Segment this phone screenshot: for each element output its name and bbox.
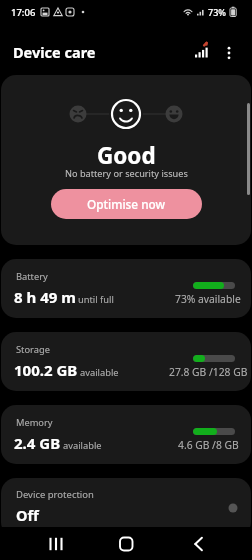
staticText: until full	[78, 293, 114, 306]
staticText: Battery	[16, 270, 48, 283]
staticText: 73%	[208, 6, 226, 18]
staticText: 27.8 GB /128 GB	[169, 365, 248, 379]
button[interactable]: Back	[175, 527, 225, 560]
staticText: Off	[16, 505, 39, 525]
staticText: 100.2 GB	[14, 360, 78, 380]
button[interactable]: Optimise now	[51, 189, 202, 219]
button[interactable]: Device protection	[1, 478, 251, 537]
button[interactable]: More options	[215, 39, 243, 67]
staticText: Optimise now	[87, 196, 166, 212]
staticText: available	[80, 366, 119, 379]
staticText: Memory	[16, 416, 53, 429]
button[interactable]: Recent apps	[30, 527, 80, 560]
staticText: Device protection	[16, 488, 94, 501]
button[interactable]: Storage	[1, 332, 251, 391]
staticText: 4.6 GB /8 GB	[178, 438, 239, 452]
staticText: 17:06	[11, 6, 36, 19]
staticText: Storage	[16, 343, 50, 356]
button[interactable]: Performance chart	[188, 39, 216, 67]
button[interactable]: Memory	[1, 405, 251, 464]
staticText: available	[63, 439, 102, 452]
staticText: 2.4 GB	[14, 433, 61, 453]
staticText: 73% available	[175, 292, 241, 306]
button[interactable]: Battery	[1, 259, 251, 318]
staticText: Good	[97, 140, 156, 171]
staticText: No battery or security issues	[65, 167, 188, 180]
staticText: Device care	[13, 42, 96, 62]
staticText: 8 h 49 m	[14, 287, 76, 307]
button[interactable]: Home	[101, 527, 151, 560]
